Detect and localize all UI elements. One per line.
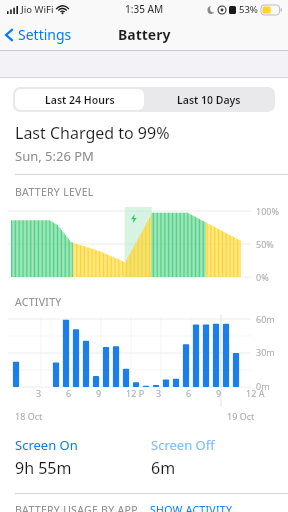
button[interactable]: SHOW ACTIVITY bbox=[150, 503, 233, 512]
staticText: Last 24 Hours bbox=[45, 93, 115, 107]
button[interactable]: Last 10 Days bbox=[144, 89, 273, 110]
staticText: Jio WiFi bbox=[21, 3, 54, 16]
staticText: BATTERY USAGE BY APP bbox=[15, 503, 138, 512]
staticText: 0m bbox=[256, 380, 270, 392]
staticText: 1:35 AM bbox=[125, 2, 164, 16]
staticText: 6 bbox=[66, 387, 72, 399]
staticText: Last Charged to 99% bbox=[15, 122, 170, 144]
staticText: 50% bbox=[256, 238, 274, 250]
staticText: 0% bbox=[256, 271, 269, 283]
staticText: 9 bbox=[96, 387, 102, 399]
staticText: 30m bbox=[256, 346, 275, 358]
staticText: 19 Oct bbox=[227, 410, 255, 422]
staticText: Sun, 5:26 PM bbox=[15, 147, 94, 165]
staticText: 53% bbox=[239, 3, 258, 16]
staticText: 6m bbox=[151, 457, 176, 479]
staticText: SHOW ACTIVITY bbox=[150, 503, 233, 512]
staticText: Screen Off bbox=[151, 436, 215, 454]
staticText: 12 A bbox=[246, 387, 265, 399]
button[interactable]: Last 24 Hours bbox=[15, 89, 144, 110]
staticText: 9 bbox=[216, 387, 222, 399]
button[interactable]: Settings bbox=[0, 21, 78, 48]
staticText: Screen On bbox=[15, 436, 78, 454]
staticText: 3 bbox=[36, 387, 42, 399]
staticText: 6 bbox=[186, 387, 192, 399]
staticText: 60m bbox=[256, 313, 275, 325]
staticText: Battery bbox=[118, 25, 171, 44]
staticText: 12 P bbox=[126, 387, 145, 399]
staticText: 100% bbox=[256, 205, 279, 217]
staticText: Settings bbox=[18, 25, 72, 44]
staticText: 3 bbox=[156, 387, 162, 399]
staticText: BATTERY LEVEL bbox=[15, 185, 94, 199]
staticText: ACTIVITY bbox=[15, 295, 62, 309]
staticText: 9h 55m bbox=[15, 457, 72, 479]
staticText: 18 Oct bbox=[15, 410, 43, 422]
staticText: Last 10 Days bbox=[177, 93, 241, 107]
